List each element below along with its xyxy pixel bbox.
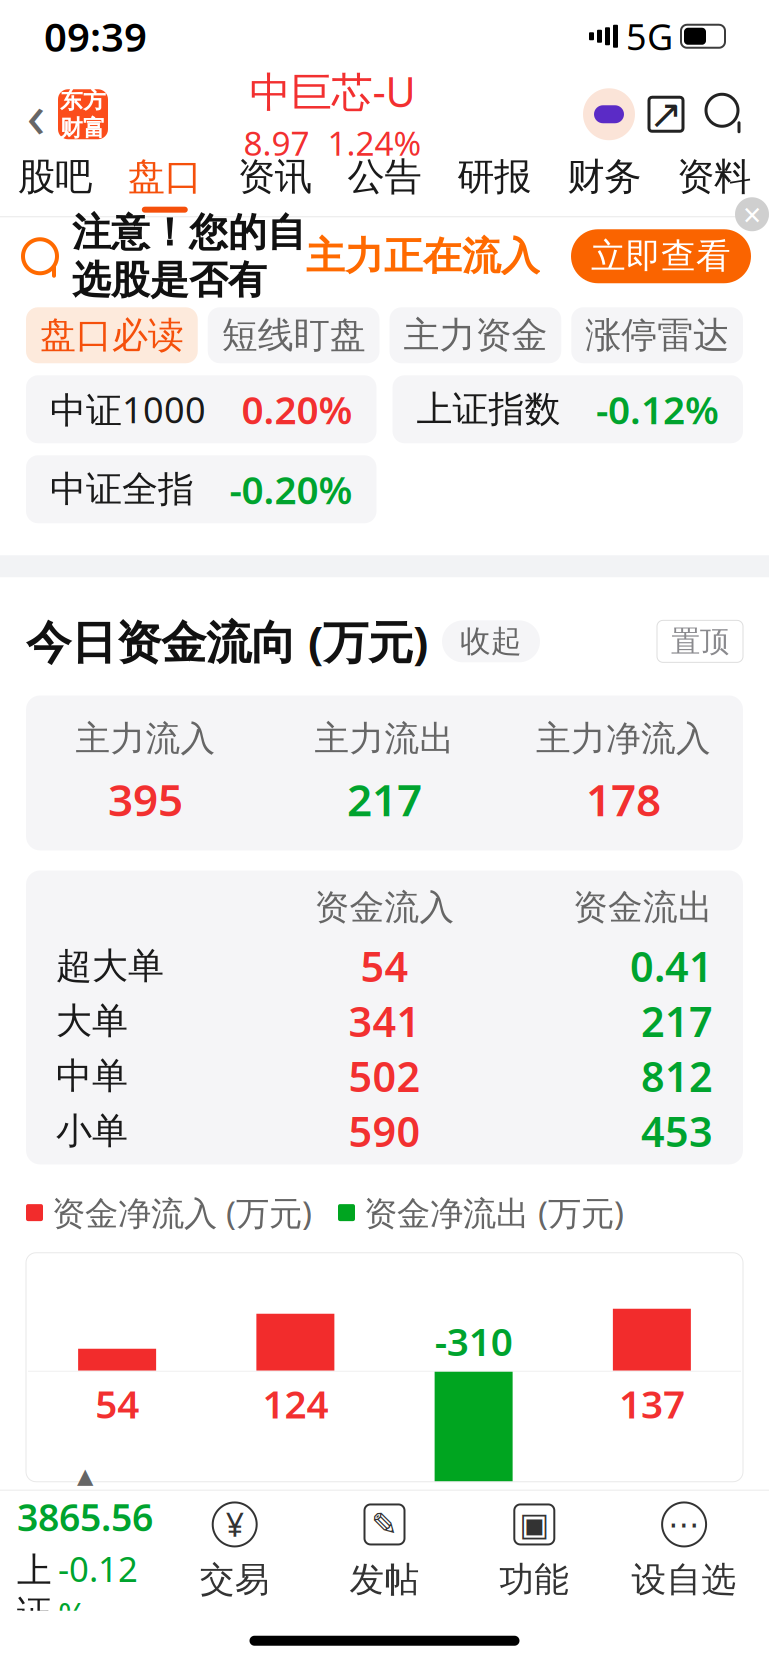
staticText: 178 xyxy=(586,770,661,828)
staticText: 立即查看 xyxy=(591,235,731,278)
staticText: 0.41 xyxy=(630,938,713,993)
staticText: 217 xyxy=(347,770,422,828)
button[interactable]: 收起 xyxy=(442,620,540,662)
staticText: 资料 xyxy=(677,154,751,200)
staticText: 502 xyxy=(348,1048,420,1103)
button[interactable]: ⋯ xyxy=(609,1500,759,1601)
button[interactable]: 主力资金 xyxy=(389,307,561,363)
button[interactable]: 置顶 xyxy=(657,620,743,662)
staticText: 上证指数 xyxy=(416,387,560,431)
staticText: ¥ xyxy=(226,1503,244,1546)
button[interactable]: Back xyxy=(14,86,58,142)
staticText: ⋯ xyxy=(668,1506,700,1543)
staticText: ✎ xyxy=(371,1506,398,1543)
staticText: 资金流入 xyxy=(314,886,454,929)
staticText: 主力流入 xyxy=(75,717,215,760)
staticText: ‹ xyxy=(26,73,45,155)
button[interactable]: 盘口必读 xyxy=(26,307,198,363)
button[interactable]: Close xyxy=(735,197,769,231)
staticText: 主力流出 xyxy=(314,717,454,760)
staticText: ▲ xyxy=(77,1464,93,1488)
button[interactable]: Search xyxy=(697,86,755,142)
staticText: 资金净流入 (万元) xyxy=(52,1190,312,1235)
staticText: 0.20% xyxy=(241,384,352,435)
staticText: 超大单 xyxy=(56,944,164,988)
staticText: 主力净流入 xyxy=(536,717,711,760)
button[interactable]: AI assistant xyxy=(583,88,635,140)
staticText: 09:39 xyxy=(44,10,147,63)
staticText: 今日资金流向 (万元) xyxy=(26,611,428,671)
button[interactable]: Share xyxy=(635,86,697,142)
staticText: ▣ xyxy=(519,1506,549,1543)
staticText: × xyxy=(743,193,761,235)
button[interactable]: 资讯 xyxy=(220,150,330,216)
staticText: 上证 xyxy=(17,1549,52,1634)
button[interactable]: 中证全指 xyxy=(26,455,376,523)
button[interactable]: 中证1000 xyxy=(26,375,376,443)
button[interactable]: 短线盯盘 xyxy=(208,307,380,363)
staticText: -0.12% xyxy=(596,384,719,435)
staticText: 资金净流出 (万元) xyxy=(364,1190,624,1235)
staticText: 收起 xyxy=(460,622,522,660)
button[interactable]: 公告 xyxy=(330,150,439,216)
staticText: 341 xyxy=(348,993,420,1048)
staticText: 8.97 1.24% xyxy=(243,121,421,165)
staticText: 置顶 xyxy=(671,623,729,659)
button[interactable]: 股吧 xyxy=(0,150,110,216)
staticText: 盘口必读 xyxy=(40,313,184,357)
staticText: 124 xyxy=(262,1378,328,1429)
button[interactable]: ▲ xyxy=(10,1464,160,1638)
staticText: 财富 xyxy=(60,114,106,142)
staticText: 中单 xyxy=(56,1054,128,1098)
button[interactable]: 上证指数 xyxy=(392,375,743,443)
staticText: 812 xyxy=(641,1048,713,1103)
staticText: 217 xyxy=(641,993,713,1048)
button[interactable]: 注意！您的自选股是否有 xyxy=(0,217,769,295)
staticText: 涨停雷达 xyxy=(585,313,729,357)
staticText: 54 xyxy=(95,1378,139,1429)
button[interactable]: ¥ xyxy=(160,1500,310,1601)
staticText: 主力资金 xyxy=(403,313,547,357)
button[interactable]: 资料 xyxy=(659,150,769,216)
staticText: 中证1000 xyxy=(50,385,206,433)
staticText: 590 xyxy=(348,1103,420,1158)
staticText: 中巨芯-U xyxy=(249,64,415,119)
button[interactable]: ✎ xyxy=(310,1500,459,1601)
staticText: 东方 xyxy=(60,86,106,114)
staticText: -310 xyxy=(435,1315,513,1367)
button[interactable]: ▣ xyxy=(459,1500,609,1601)
staticText: 资讯 xyxy=(238,154,312,200)
staticText: 股吧 xyxy=(18,154,92,200)
staticText: 3865.56 xyxy=(17,1492,153,1542)
staticText: 盘口 xyxy=(128,154,202,200)
staticText: 短线盯盘 xyxy=(222,313,366,357)
staticText: 5G xyxy=(626,12,673,60)
staticText: 137 xyxy=(619,1378,685,1429)
staticText: 大单 xyxy=(56,999,128,1043)
staticText: 453 xyxy=(641,1103,713,1158)
staticText: 注意！您的自选股是否有 xyxy=(72,209,306,304)
staticText: 发帖 xyxy=(349,1558,419,1601)
button[interactable]: 财务 xyxy=(549,150,659,216)
button[interactable]: 盘口 xyxy=(110,150,220,216)
staticText: 小单 xyxy=(56,1109,128,1153)
staticText: 交易 xyxy=(200,1558,270,1601)
staticText: -0.12% xyxy=(58,1546,138,1638)
staticText: -0.20% xyxy=(229,464,352,515)
button[interactable]: 研报 xyxy=(439,150,549,216)
staticText: 中证全指 xyxy=(50,467,194,511)
button[interactable]: 涨停雷达 xyxy=(571,307,743,363)
staticText: ↗ xyxy=(649,92,683,137)
staticText: 资金流出 xyxy=(573,886,713,929)
staticText: 财务 xyxy=(567,154,641,200)
staticText: 54 xyxy=(360,938,408,993)
staticText: 公告 xyxy=(347,154,421,200)
button[interactable]: 东方财富 xyxy=(58,89,108,139)
staticText: 主力正在流入 xyxy=(306,232,540,280)
staticText: 设自选 xyxy=(632,1558,737,1601)
staticText: 395 xyxy=(108,770,183,828)
staticText: 功能 xyxy=(499,1558,569,1601)
staticText: 研报 xyxy=(457,154,531,200)
